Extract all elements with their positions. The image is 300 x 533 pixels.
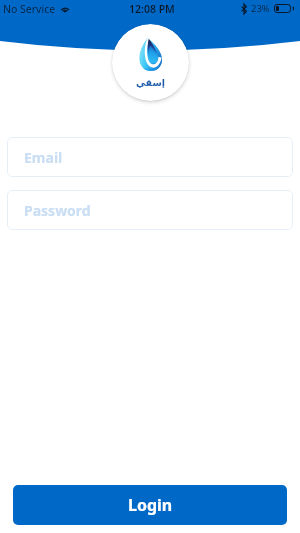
staticText: إسقي [136, 77, 166, 88]
staticText: 23% [251, 2, 270, 15]
other: Bluetooth [241, 4, 247, 14]
staticText: Email [24, 148, 63, 167]
button[interactable]: Email [7, 137, 293, 177]
staticText: No Service [3, 2, 56, 16]
button[interactable]: Login [13, 485, 287, 525]
button[interactable]: Password [7, 190, 293, 230]
other: Wi-Fi [60, 4, 70, 13]
staticText: Login [128, 494, 173, 516]
staticText: Password [24, 201, 91, 220]
staticText: 12:08 PM [129, 2, 175, 16]
other: Battery [274, 4, 293, 13]
